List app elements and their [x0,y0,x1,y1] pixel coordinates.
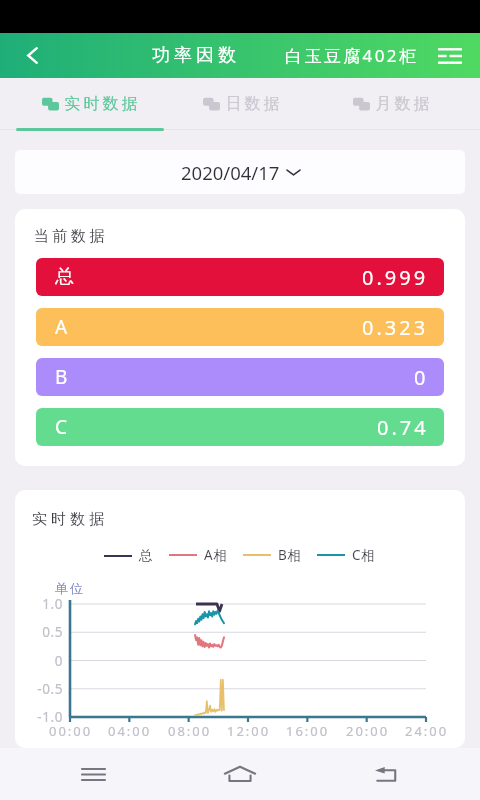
button[interactable]: 总 [104,547,154,564]
button[interactable]: A相 [169,546,228,564]
staticText: 0 [414,364,429,391]
staticText: 24:00 [405,722,449,740]
staticText: A [55,314,68,340]
button[interactable]: B [36,358,444,396]
staticText: C相 [352,546,376,564]
staticText: 16:00 [286,722,330,740]
button[interactable]: 日数据 [182,78,302,129]
staticText: 总 [139,547,154,564]
button[interactable]: C相 [317,546,376,564]
button[interactable]: 2020/04/17 [15,150,465,194]
staticText: 0.74 [377,414,429,441]
staticText: 1.0 [42,595,63,613]
button[interactable]: A [36,308,444,346]
staticText: 2020/04/17 [181,160,280,185]
button[interactable]: Back [350,748,422,800]
staticText: 04:00 [108,722,152,740]
staticText: 单位 [54,580,84,596]
staticText: 00:00 [49,722,93,740]
button[interactable]: 总 [36,258,444,296]
staticText: B相 [278,546,302,564]
staticText: 月数据 [374,94,431,114]
staticText: 0.5 [42,623,63,641]
staticText: 0.999 [362,264,429,291]
staticText: 08:00 [168,722,212,740]
staticText: 12:00 [227,722,271,740]
staticText: 实时数据 [30,510,106,529]
button[interactable]: B相 [243,546,302,564]
staticText: A相 [204,546,228,564]
button[interactable]: Recent apps [57,748,129,800]
staticText: 白玉豆腐402柜 [285,44,419,67]
staticText: B [55,364,68,390]
staticText: 功率因数 [150,44,238,67]
staticText: 20:00 [346,722,390,740]
button[interactable]: 月数据 [332,78,452,129]
staticText: 实时数据 [63,94,139,114]
button[interactable]: Menu [426,33,474,78]
staticText: C [55,414,68,440]
button[interactable]: 实时数据 [16,78,164,129]
staticText: 当前数据 [32,227,106,246]
button[interactable]: Back [0,33,54,78]
button[interactable]: Home [204,748,276,800]
staticText: 0 [54,652,63,670]
staticText: 总 [55,265,74,289]
staticText: 日数据 [224,94,281,114]
staticText: 0.323 [362,314,429,341]
staticText: -0.5 [37,680,63,698]
staticText: -1.0 [37,708,63,726]
button[interactable]: C [36,408,444,446]
